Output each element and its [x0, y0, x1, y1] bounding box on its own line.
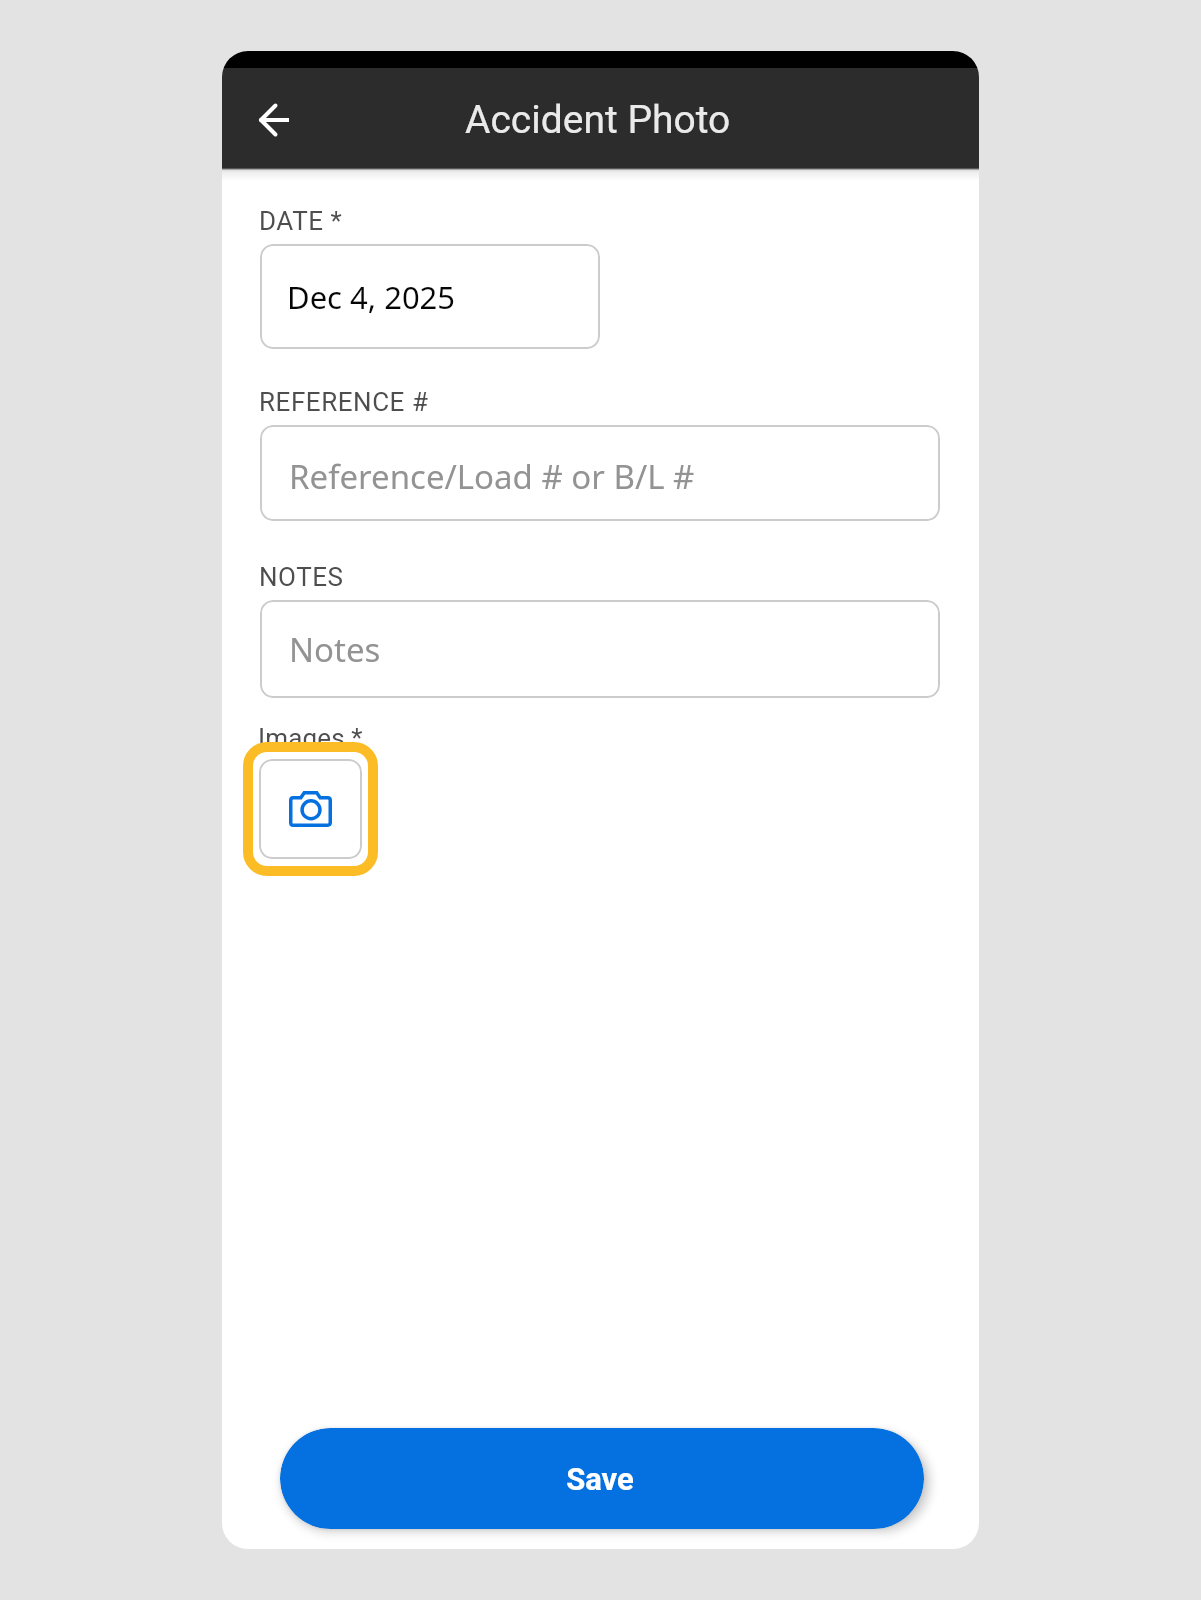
button[interactable]: Take photo — [243, 742, 378, 876]
button[interactable]: Back — [243, 89, 304, 150]
staticText: Images * — [258, 723, 363, 753]
staticText: REFERENCE # — [259, 387, 429, 417]
button[interactable]: Dec 4, 2025 — [260, 244, 600, 349]
button[interactable]: Save — [280, 1428, 924, 1529]
staticText: NOTES — [259, 562, 344, 592]
staticText: Dec 4, 2025 — [287, 276, 456, 318]
staticText: Notes — [289, 627, 381, 672]
staticText: Reference/Load # or B/L # — [289, 454, 695, 499]
staticText: Save — [566, 1461, 634, 1497]
staticText: DATE * — [259, 206, 343, 236]
button[interactable]: Reference/Load # or B/L # — [260, 425, 940, 521]
button[interactable]: Notes — [260, 600, 940, 698]
staticText: Accident Photo — [465, 97, 731, 143]
